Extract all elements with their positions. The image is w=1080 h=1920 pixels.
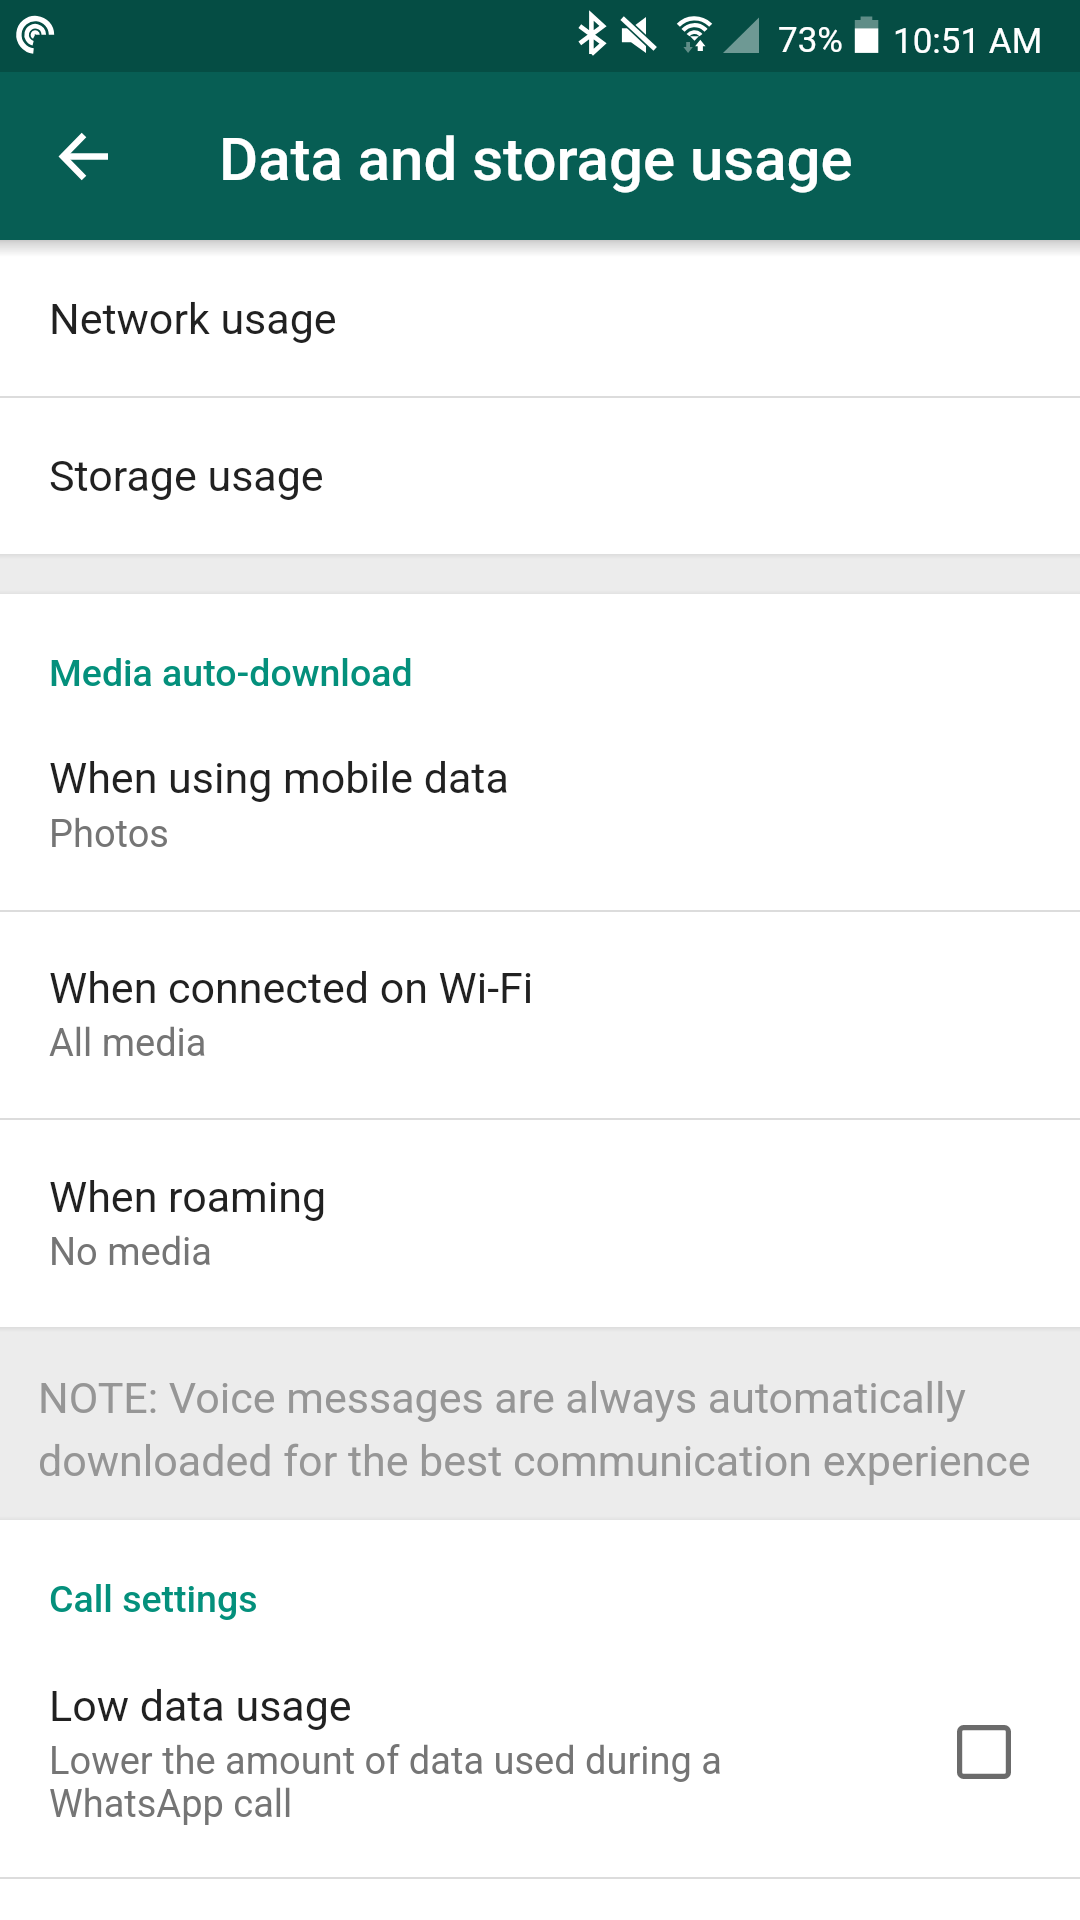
staticText: Photos	[49, 811, 169, 856]
button[interactable]: Storage usage	[0, 398, 1080, 554]
button[interactable]: Low data usage	[0, 1628, 1080, 1877]
staticText: 10:51 AM	[893, 21, 1043, 62]
staticText: Storage usage	[49, 451, 324, 501]
staticText: Network usage	[49, 294, 337, 344]
staticText: No media	[49, 1229, 213, 1274]
staticText: NOTE: Voice messages are always automati…	[38, 1363, 1048, 1489]
staticText: Call settings	[49, 1577, 258, 1621]
button[interactable]: When using mobile data	[0, 702, 1080, 910]
button[interactable]: Network usage	[0, 240, 1080, 396]
staticText: Low data usage	[49, 1681, 352, 1731]
staticText: All media	[49, 1020, 207, 1065]
staticText: Lower the amount of data used during a W…	[49, 1740, 749, 1826]
button[interactable]: When connected on Wi-Fi	[0, 912, 1080, 1118]
button[interactable]: Low data usage checkbox	[909, 1677, 1059, 1827]
staticText: 73%	[778, 20, 843, 61]
staticText: When connected on Wi-Fi	[49, 963, 534, 1013]
staticText: Data and storage usage	[219, 124, 853, 195]
button[interactable]: When roaming	[0, 1120, 1080, 1327]
button[interactable]: Back	[36, 108, 132, 204]
staticText: Media auto-download	[49, 651, 413, 695]
staticText: When using mobile data	[49, 753, 509, 803]
staticText: When roaming	[49, 1172, 327, 1222]
